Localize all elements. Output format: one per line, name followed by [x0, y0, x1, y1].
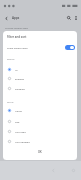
button[interactable]: Last updated	[3, 137, 77, 146]
button[interactable]: Show system apps	[3, 43, 77, 51]
staticText: Name	[15, 109, 22, 112]
staticText: Sort by	[7, 101, 14, 104]
button[interactable]: All	[3, 65, 77, 74]
button[interactable]: Disabled	[3, 84, 77, 93]
button[interactable]: Last used	[3, 127, 77, 136]
button[interactable]: Search	[65, 14, 73, 22]
button[interactable]: OK	[35, 149, 45, 155]
staticText: Disabled	[15, 87, 25, 90]
staticText: Enabled	[15, 77, 25, 80]
staticText: Filter by	[7, 58, 15, 61]
staticText: Show system apps	[7, 46, 28, 49]
button[interactable]: Choose default apps	[0, 24, 81, 31]
button[interactable]: Back	[2, 14, 10, 22]
button[interactable]: Size	[3, 117, 77, 126]
staticText: Last used	[15, 130, 26, 133]
staticText: Size	[15, 120, 20, 123]
staticText: Filter and sort	[7, 35, 27, 39]
staticText: Last updated	[15, 140, 30, 143]
staticText: Choose default apps	[5, 26, 28, 29]
button[interactable]: Name	[3, 106, 77, 115]
staticText: All	[15, 68, 18, 71]
button[interactable]: Enabled	[3, 74, 77, 83]
staticText: Apps	[12, 16, 20, 20]
button[interactable]: More options	[73, 15, 79, 21]
staticText: OK	[38, 150, 42, 154]
